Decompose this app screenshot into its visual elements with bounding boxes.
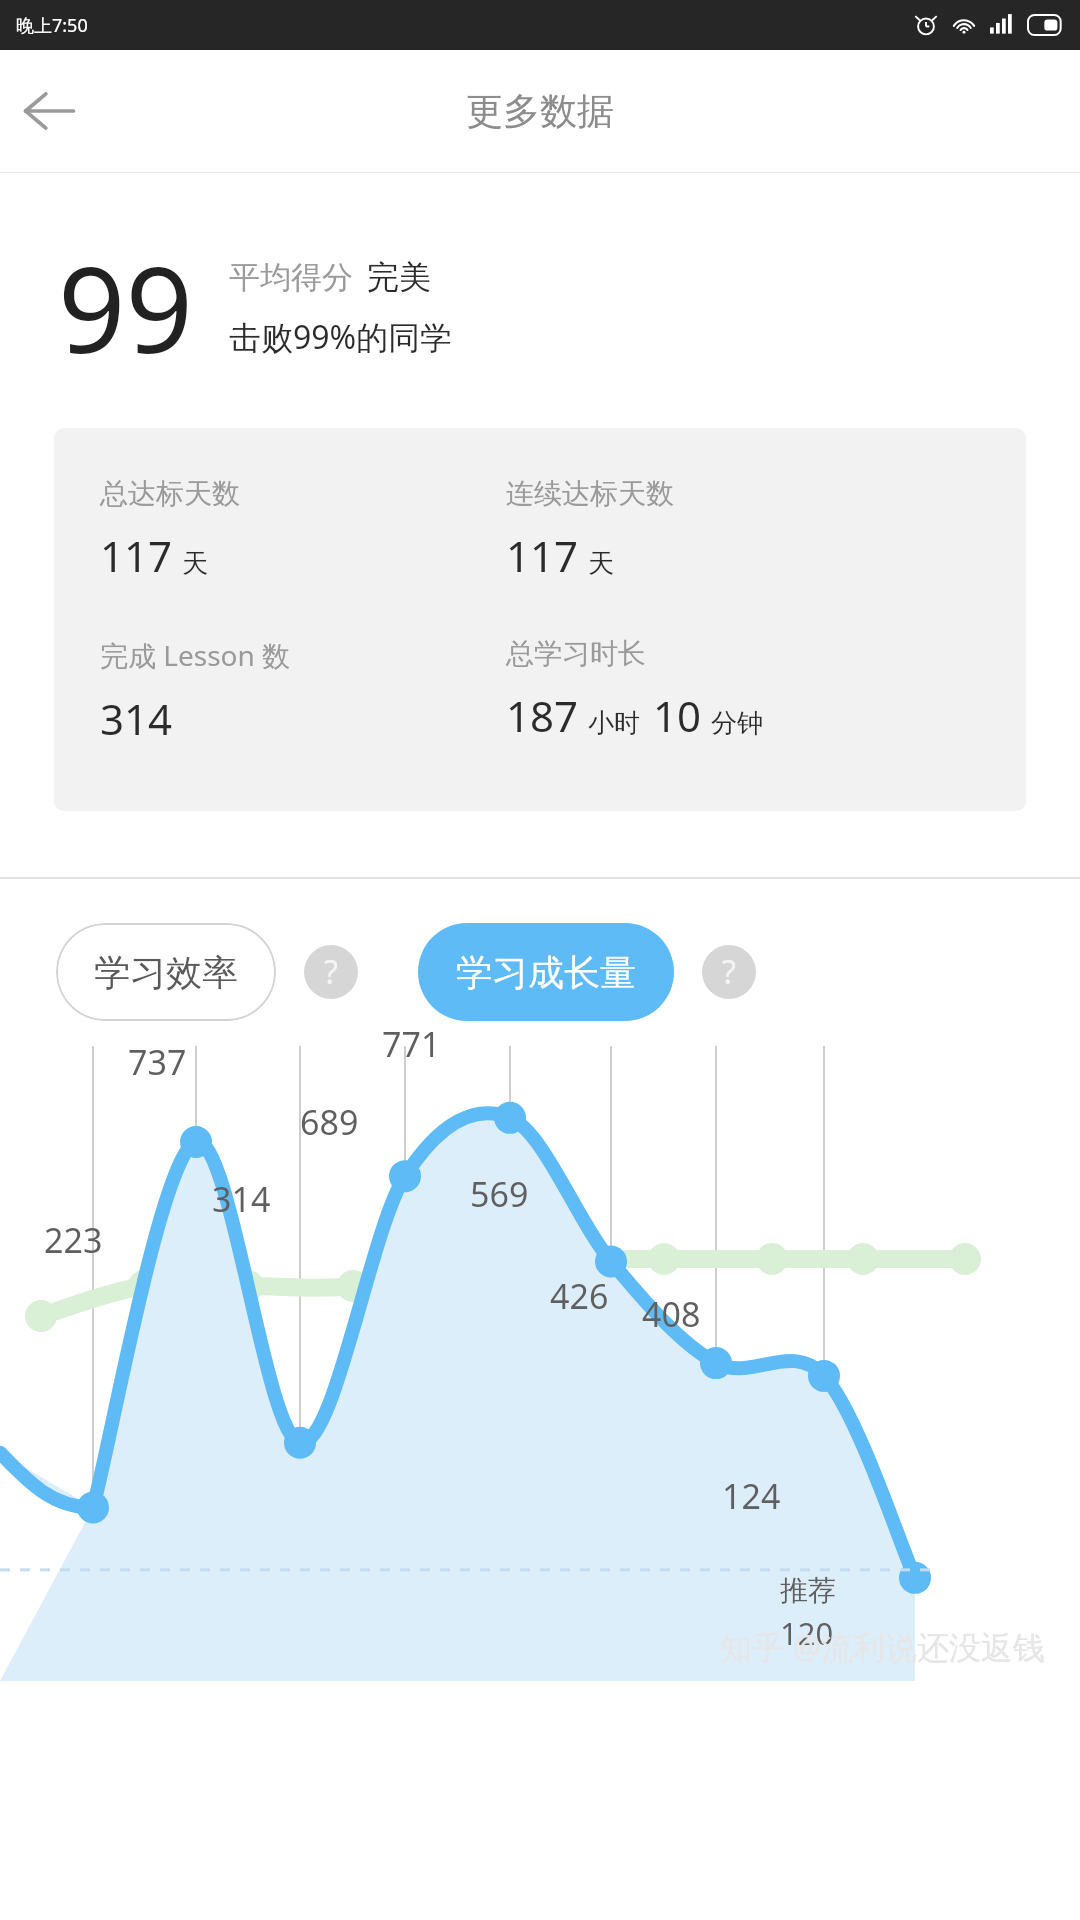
staticText: 学习效率 (94, 950, 238, 995)
staticText: ? (324, 950, 338, 994)
staticText: 分钟 (711, 707, 763, 740)
staticText: 推荐 (780, 1573, 836, 1608)
staticText: 737 (128, 1039, 187, 1085)
button[interactable]: Help (702, 945, 756, 999)
staticText: 771 (382, 1021, 441, 1067)
staticText: 更多数据 (466, 88, 614, 135)
staticText: 117 (506, 527, 579, 584)
button[interactable]: 学习成长量 (418, 923, 674, 1021)
staticText: 117 (100, 527, 173, 584)
staticText: 314 (212, 1176, 271, 1222)
staticText: 完美 (367, 257, 431, 297)
staticText: 晚上7:50 (16, 13, 88, 38)
staticText: 689 (300, 1099, 359, 1145)
staticText: 总达标天数 (100, 476, 240, 511)
button[interactable]: 学习效率 (56, 923, 276, 1021)
button[interactable]: Back (6, 68, 92, 154)
staticText: 完成 Lesson 数 (100, 636, 291, 674)
staticText: ? (722, 950, 736, 994)
staticText: 124 (722, 1473, 781, 1519)
staticText: 平均得分 (229, 258, 353, 297)
staticText: 99 (58, 227, 193, 388)
staticText: 426 (550, 1273, 609, 1319)
staticText: 击败99%的同学 (229, 315, 453, 359)
button[interactable]: Help (304, 945, 358, 999)
staticText: 408 (642, 1291, 701, 1337)
staticText: 总学习时长 (506, 636, 646, 671)
staticText: 连续达标天数 (506, 476, 674, 511)
staticText: 187 (506, 687, 579, 744)
staticText: 天 (182, 547, 208, 580)
staticText: 知乎 @流利说还没返钱 (720, 1625, 1046, 1669)
staticText: 120 (780, 1612, 834, 1654)
staticText: 小时 (588, 707, 640, 740)
staticText: 314 (100, 690, 173, 747)
staticText: 569 (470, 1171, 529, 1217)
staticText: 223 (44, 1217, 103, 1263)
staticText: 天 (588, 547, 614, 580)
staticText: 10 (653, 687, 702, 744)
staticText: 学习成长量 (456, 950, 636, 995)
